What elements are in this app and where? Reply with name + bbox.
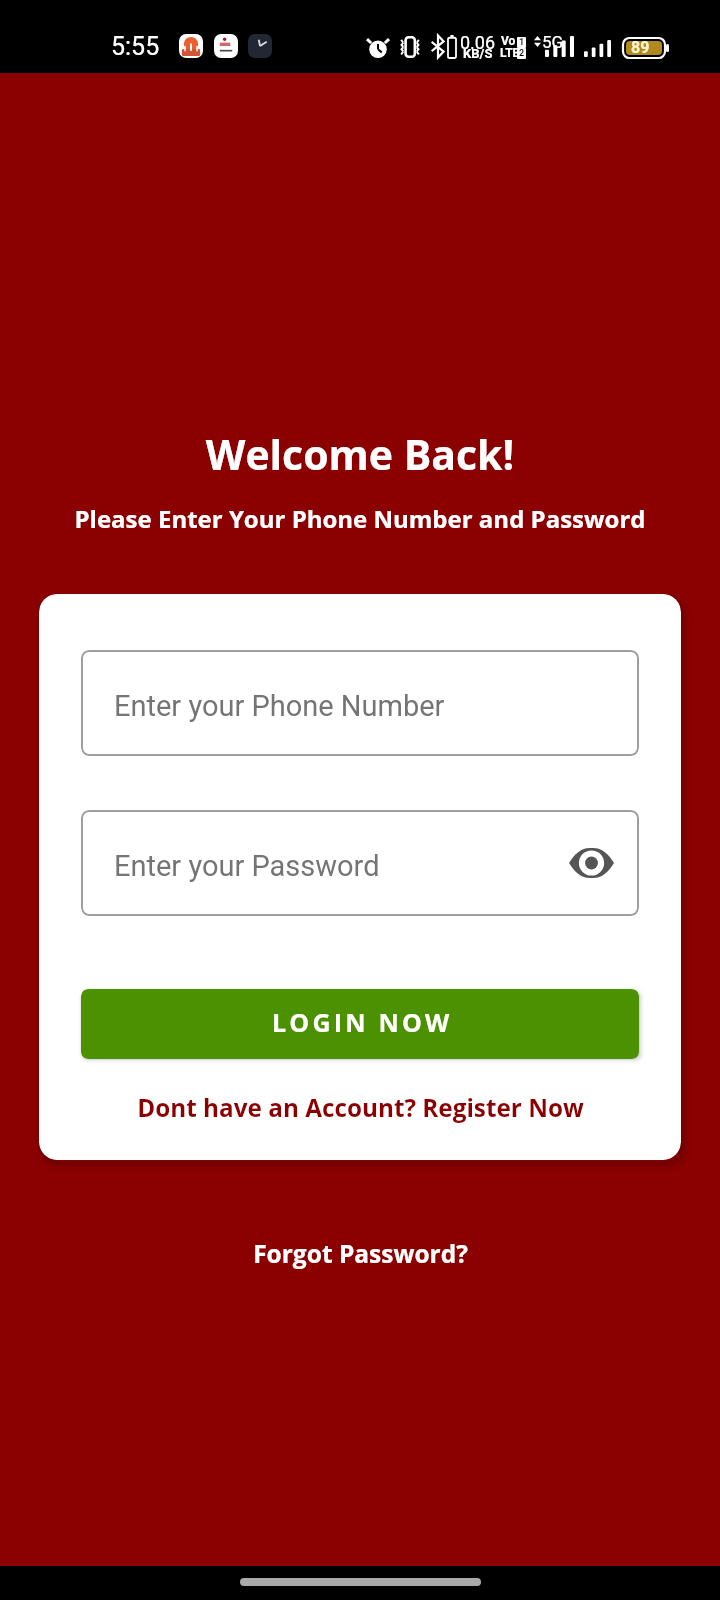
staticText: 2 xyxy=(519,48,525,59)
staticText: 5:55 xyxy=(111,32,160,61)
staticText: Enter your Password xyxy=(114,849,380,883)
button[interactable]: Show password xyxy=(567,839,615,887)
staticText: LOGIN NOW xyxy=(272,1005,453,1039)
staticText: 5G xyxy=(542,32,564,52)
button[interactable]: Forgot Password? xyxy=(230,1237,490,1270)
staticText: Enter your Phone Number xyxy=(114,689,445,723)
staticText: 89 xyxy=(631,38,650,57)
staticText: Dont have an Account? Register Now xyxy=(137,1091,584,1124)
button[interactable]: Dont have an Account? Register Now xyxy=(129,1091,591,1124)
button[interactable]: Enter your Phone Number xyxy=(81,650,639,756)
staticText: 0.06 xyxy=(460,32,496,53)
staticText: Please Enter Your Phone Number and Passw… xyxy=(0,502,720,535)
staticText: Forgot Password? xyxy=(253,1237,468,1270)
button[interactable]: Enter your Password xyxy=(81,810,639,916)
staticText: Welcome Back! xyxy=(0,426,720,482)
button[interactable]: LOGIN NOW xyxy=(81,989,639,1059)
staticText: 1 xyxy=(519,37,525,48)
staticText: LTE xyxy=(500,46,520,60)
staticText: KB/S xyxy=(463,46,493,61)
staticText: Vo xyxy=(501,34,516,48)
